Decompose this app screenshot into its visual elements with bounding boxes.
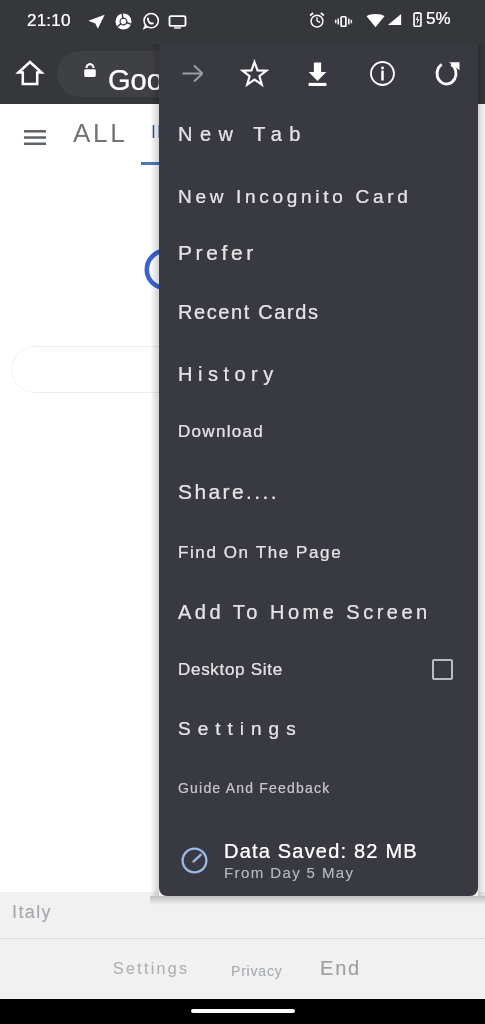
button[interactable]: Settings [113, 960, 190, 978]
staticText: 5% [426, 9, 451, 28]
button[interactable]: Home [10, 53, 50, 93]
button[interactable]: Privacy [231, 963, 283, 979]
staticText: Find On The Page [178, 543, 343, 562]
button[interactable]: ALL [73, 118, 128, 147]
button[interactable]: Prefer [159, 229, 478, 275]
button[interactable]: Find On The Page [159, 529, 478, 575]
button[interactable]: Add To Home Screen [159, 589, 478, 635]
button[interactable]: Download [159, 408, 478, 454]
staticText: Settings [113, 960, 190, 978]
button[interactable]: Share.... [159, 468, 478, 514]
button[interactable]: Forward [168, 49, 216, 97]
button[interactable]: New Incognito Card [159, 173, 478, 219]
staticText: New Incognito Card [178, 186, 412, 207]
button[interactable]: New Tab [159, 111, 478, 157]
button[interactable]: Download page [293, 49, 341, 97]
staticText: Settings [178, 718, 303, 739]
staticText: From Day 5 May [224, 864, 355, 881]
staticText: Italy [12, 902, 53, 922]
staticText: History [178, 363, 279, 385]
staticText: 21:10 [27, 11, 71, 30]
button[interactable]: Recent Cards [159, 289, 478, 335]
button[interactable]: Reload [423, 49, 471, 97]
button[interactable] [57, 51, 217, 97]
button[interactable]: Navigation menu [18, 120, 52, 154]
staticText: Desktop Site [178, 660, 283, 679]
staticText: New Tab [178, 123, 308, 145]
button[interactable]: Desktop Site [159, 646, 478, 692]
staticText: Download [178, 422, 265, 441]
staticText: Share.... [178, 480, 279, 503]
button[interactable]: Page info [358, 49, 406, 97]
staticText: Recent Cards [178, 301, 320, 323]
staticText: End [320, 957, 361, 979]
staticText: Data Saved: 82 MB [224, 840, 418, 862]
staticText: Googl [108, 64, 186, 96]
button[interactable]: End [320, 957, 361, 979]
button[interactable] [11, 346, 451, 393]
button[interactable]: Settings [159, 705, 478, 751]
button[interactable]: Data Saved: 82 MB [159, 824, 478, 896]
button[interactable]: History [159, 351, 478, 397]
staticText: Prefer [178, 241, 257, 264]
button[interactable]: Guide And Feedback [159, 765, 478, 811]
staticText: Guide And Feedback [178, 780, 331, 796]
button[interactable]: Bookmark [230, 49, 278, 97]
staticText: Privacy [231, 963, 283, 979]
staticText: Add To Home Screen [178, 601, 431, 623]
button[interactable]: IM [151, 122, 173, 142]
